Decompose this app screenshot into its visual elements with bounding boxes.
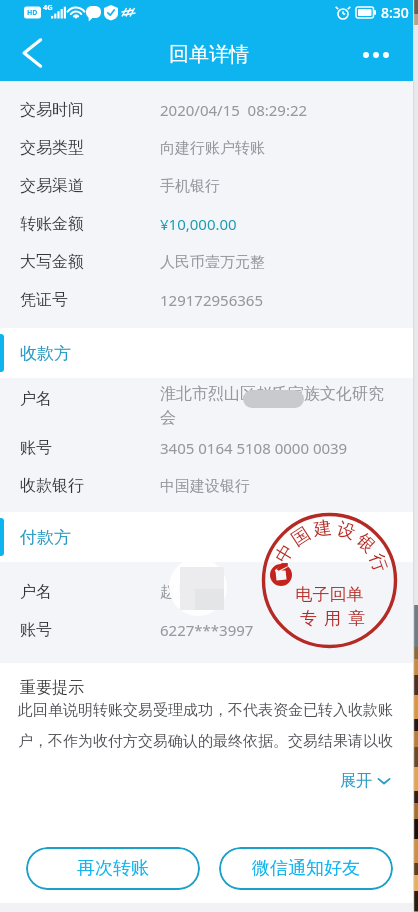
- staticText: 8:30: [381, 3, 409, 22]
- staticText: 展开: [340, 771, 372, 791]
- staticText: 大写金额: [20, 252, 84, 272]
- button[interactable]: 展开: [340, 771, 391, 791]
- staticText: 微信通知好友: [252, 857, 360, 880]
- button[interactable]: 户名: [0, 573, 418, 611]
- button[interactable]: 再次转账: [26, 847, 200, 890]
- button[interactable]: 账号: [0, 429, 418, 467]
- button[interactable]: 交易渠道: [0, 167, 418, 205]
- staticText: 再次转账: [77, 857, 149, 880]
- button[interactable]: 转账金额: [0, 205, 418, 243]
- staticText: 淮北市烈山区赵氏家族文化研究会: [160, 384, 393, 428]
- button[interactable]: Back: [0, 25, 56, 81]
- button[interactable]: 交易时间: [0, 91, 418, 129]
- staticText: 中国建设银行: [160, 477, 250, 496]
- button[interactable]: 户名: [0, 379, 418, 425]
- staticText: ¥10,000.00: [160, 214, 237, 234]
- staticText: 此回单说明转账交易受理成功，不代表资金已转入收款账户，不作为收付方交易确认的最终…: [18, 701, 401, 751]
- staticText: 付款方: [20, 527, 71, 548]
- staticText: 交易类型: [20, 138, 84, 158]
- staticText: 6227***3997: [160, 620, 254, 640]
- staticText: 129172956365: [160, 290, 263, 310]
- staticText: 户名: [20, 582, 52, 602]
- staticText: 收款方: [20, 343, 71, 364]
- staticText: 交易时间: [20, 100, 84, 120]
- staticText: 交易渠道: [20, 176, 84, 196]
- button[interactable]: 账号: [0, 611, 418, 649]
- button[interactable]: 收款银行: [0, 467, 418, 505]
- staticText: 回单详情: [169, 42, 249, 67]
- staticText: 重要提示: [20, 678, 84, 698]
- staticText: 收款银行: [20, 476, 84, 496]
- button[interactable]: 微信通知好友: [219, 847, 393, 890]
- staticText: 手机银行: [160, 177, 220, 196]
- staticText: 凭证号: [20, 290, 68, 310]
- button[interactable]: 交易类型: [0, 129, 418, 167]
- staticText: 账号: [20, 620, 52, 640]
- staticText: 赵某某: [160, 583, 205, 602]
- staticText: 向建行账户转账: [160, 139, 265, 158]
- button[interactable]: 凭证号: [0, 281, 418, 319]
- staticText: 户名: [20, 389, 52, 409]
- staticText: 2020/04/15 08:29:22: [160, 100, 308, 120]
- button[interactable]: 大写金额: [0, 243, 418, 281]
- staticText: 3405 0164 5108 0000 0039: [160, 438, 348, 458]
- staticText: 人民币壹万元整: [160, 253, 265, 272]
- staticText: 账号: [20, 438, 52, 458]
- staticText: 转账金额: [20, 214, 84, 234]
- button[interactable]: More options: [350, 27, 402, 79]
